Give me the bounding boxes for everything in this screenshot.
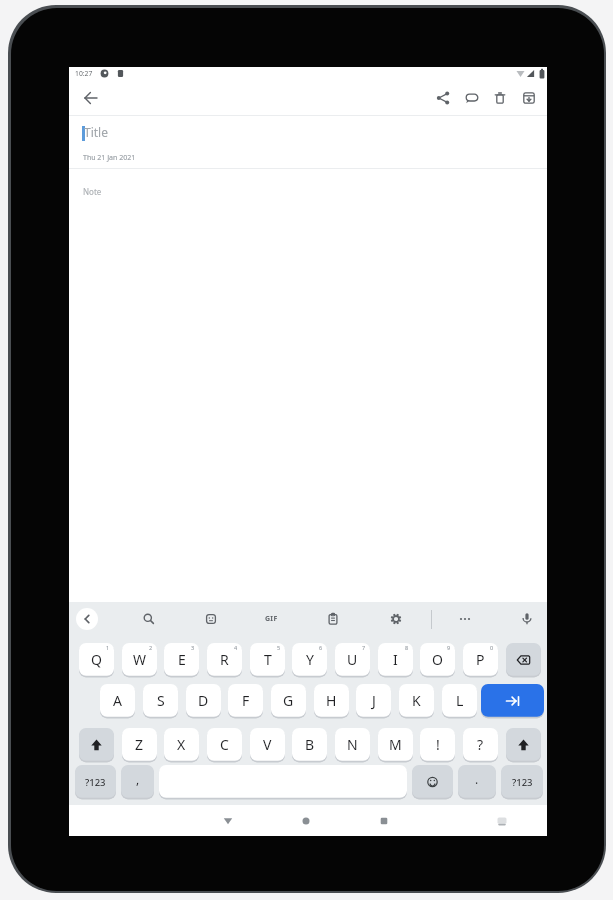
staticText: C [220,735,229,754]
button[interactable] [137,607,161,631]
button[interactable] [515,607,539,631]
button[interactable] [506,728,541,762]
button[interactable] [115,68,126,79]
staticText: 1 [106,644,110,651]
staticText: GIF [265,614,278,624]
button[interactable]: V [250,728,285,762]
staticText: 8 [405,644,409,651]
staticText: Note [83,186,102,197]
button[interactable]: B [292,728,327,762]
button[interactable] [321,607,345,631]
staticText: E [178,650,186,669]
button[interactable]: O [420,643,455,677]
button[interactable]: ? [463,728,498,762]
button[interactable]: X [164,728,199,762]
button[interactable] [429,84,457,112]
button[interactable]: L [442,684,477,718]
staticText: Title [84,124,108,140]
staticText: 9 [447,644,451,651]
staticText: T [264,650,272,669]
button[interactable] [525,68,536,79]
button[interactable] [481,684,544,718]
staticText: ! [436,735,440,754]
staticText: Q [91,650,102,669]
staticText: I [393,650,398,669]
staticText: 3 [191,644,195,651]
button[interactable]: S [143,684,178,718]
staticText: B [305,735,315,754]
staticText: 5 [277,644,281,651]
button[interactable]: D [186,684,221,718]
staticText: 2 [149,644,153,651]
button[interactable] [384,607,408,631]
button[interactable]: H [314,684,349,718]
button[interactable]: J [356,684,391,718]
staticText: Thu 21 Jan 2021 [83,153,136,163]
staticText: Z [135,735,144,754]
button[interactable]: Y [292,643,327,677]
staticText: O [432,650,443,669]
button[interactable]: R [207,643,242,677]
staticText: Y [306,650,314,669]
button[interactable] [506,643,541,677]
button[interactable] [79,728,114,762]
button[interactable]: F [228,684,263,718]
button[interactable]: , [121,765,154,799]
staticText: D [198,691,209,710]
button[interactable] [458,84,486,112]
staticText: ?123 [85,776,106,789]
button[interactable]: ! [420,728,455,762]
button[interactable]: . [458,765,496,799]
staticText: G [283,691,294,710]
button[interactable] [515,84,543,112]
button[interactable]: K [399,684,434,718]
button[interactable] [372,809,396,833]
staticText: M [389,735,402,754]
staticText: J [372,691,376,710]
staticText: 7 [362,644,366,651]
button[interactable] [216,809,240,833]
button[interactable]: U [335,643,370,677]
staticText: S [157,691,165,710]
staticText: L [456,691,464,710]
staticText: ?123 [512,776,533,789]
staticText: N [347,735,358,754]
button[interactable]: P [463,643,498,677]
staticText: R [220,650,229,669]
button[interactable]: A [100,684,135,718]
button[interactable] [490,809,514,833]
button[interactable] [515,68,526,79]
button[interactable]: N [335,728,370,762]
button[interactable]: ?123 [501,765,543,799]
button[interactable] [486,84,514,112]
button[interactable] [294,809,318,833]
button[interactable] [199,607,223,631]
staticText: 6 [319,644,323,651]
button[interactable]: G [271,684,306,718]
button[interactable] [536,68,548,80]
button[interactable]: E [164,643,199,677]
button[interactable] [453,607,477,631]
button[interactable] [99,68,110,79]
staticText: P [476,650,485,669]
button[interactable]: GIF [259,607,283,631]
button[interactable] [412,765,453,799]
button[interactable] [76,608,98,630]
staticText: U [347,650,358,669]
staticText: . [475,771,479,787]
staticText: 0 [490,644,494,651]
button[interactable]: W [122,643,157,677]
button[interactable] [159,765,407,799]
staticText: K [412,691,421,710]
button[interactable]: Z [122,728,157,762]
button[interactable] [77,84,105,112]
staticText: 10:27 [75,69,93,78]
button[interactable]: Q [79,643,114,677]
staticText: 4 [234,644,238,651]
button[interactable]: M [378,728,413,762]
button[interactable]: T [250,643,285,677]
button[interactable]: I [378,643,413,677]
button[interactable]: C [207,728,242,762]
button[interactable]: ?123 [75,765,116,799]
staticText: X [177,735,186,754]
